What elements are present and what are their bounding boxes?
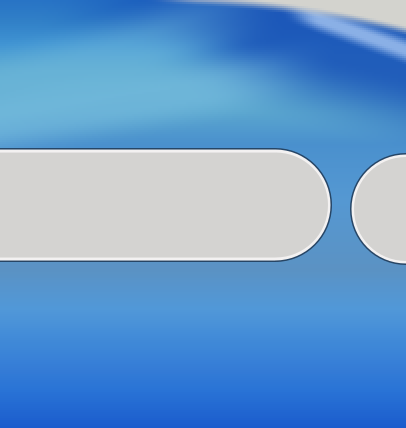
button[interactable]: App Store bbox=[350, 153, 406, 265]
button[interactable]: Search bbox=[0, 148, 332, 262]
